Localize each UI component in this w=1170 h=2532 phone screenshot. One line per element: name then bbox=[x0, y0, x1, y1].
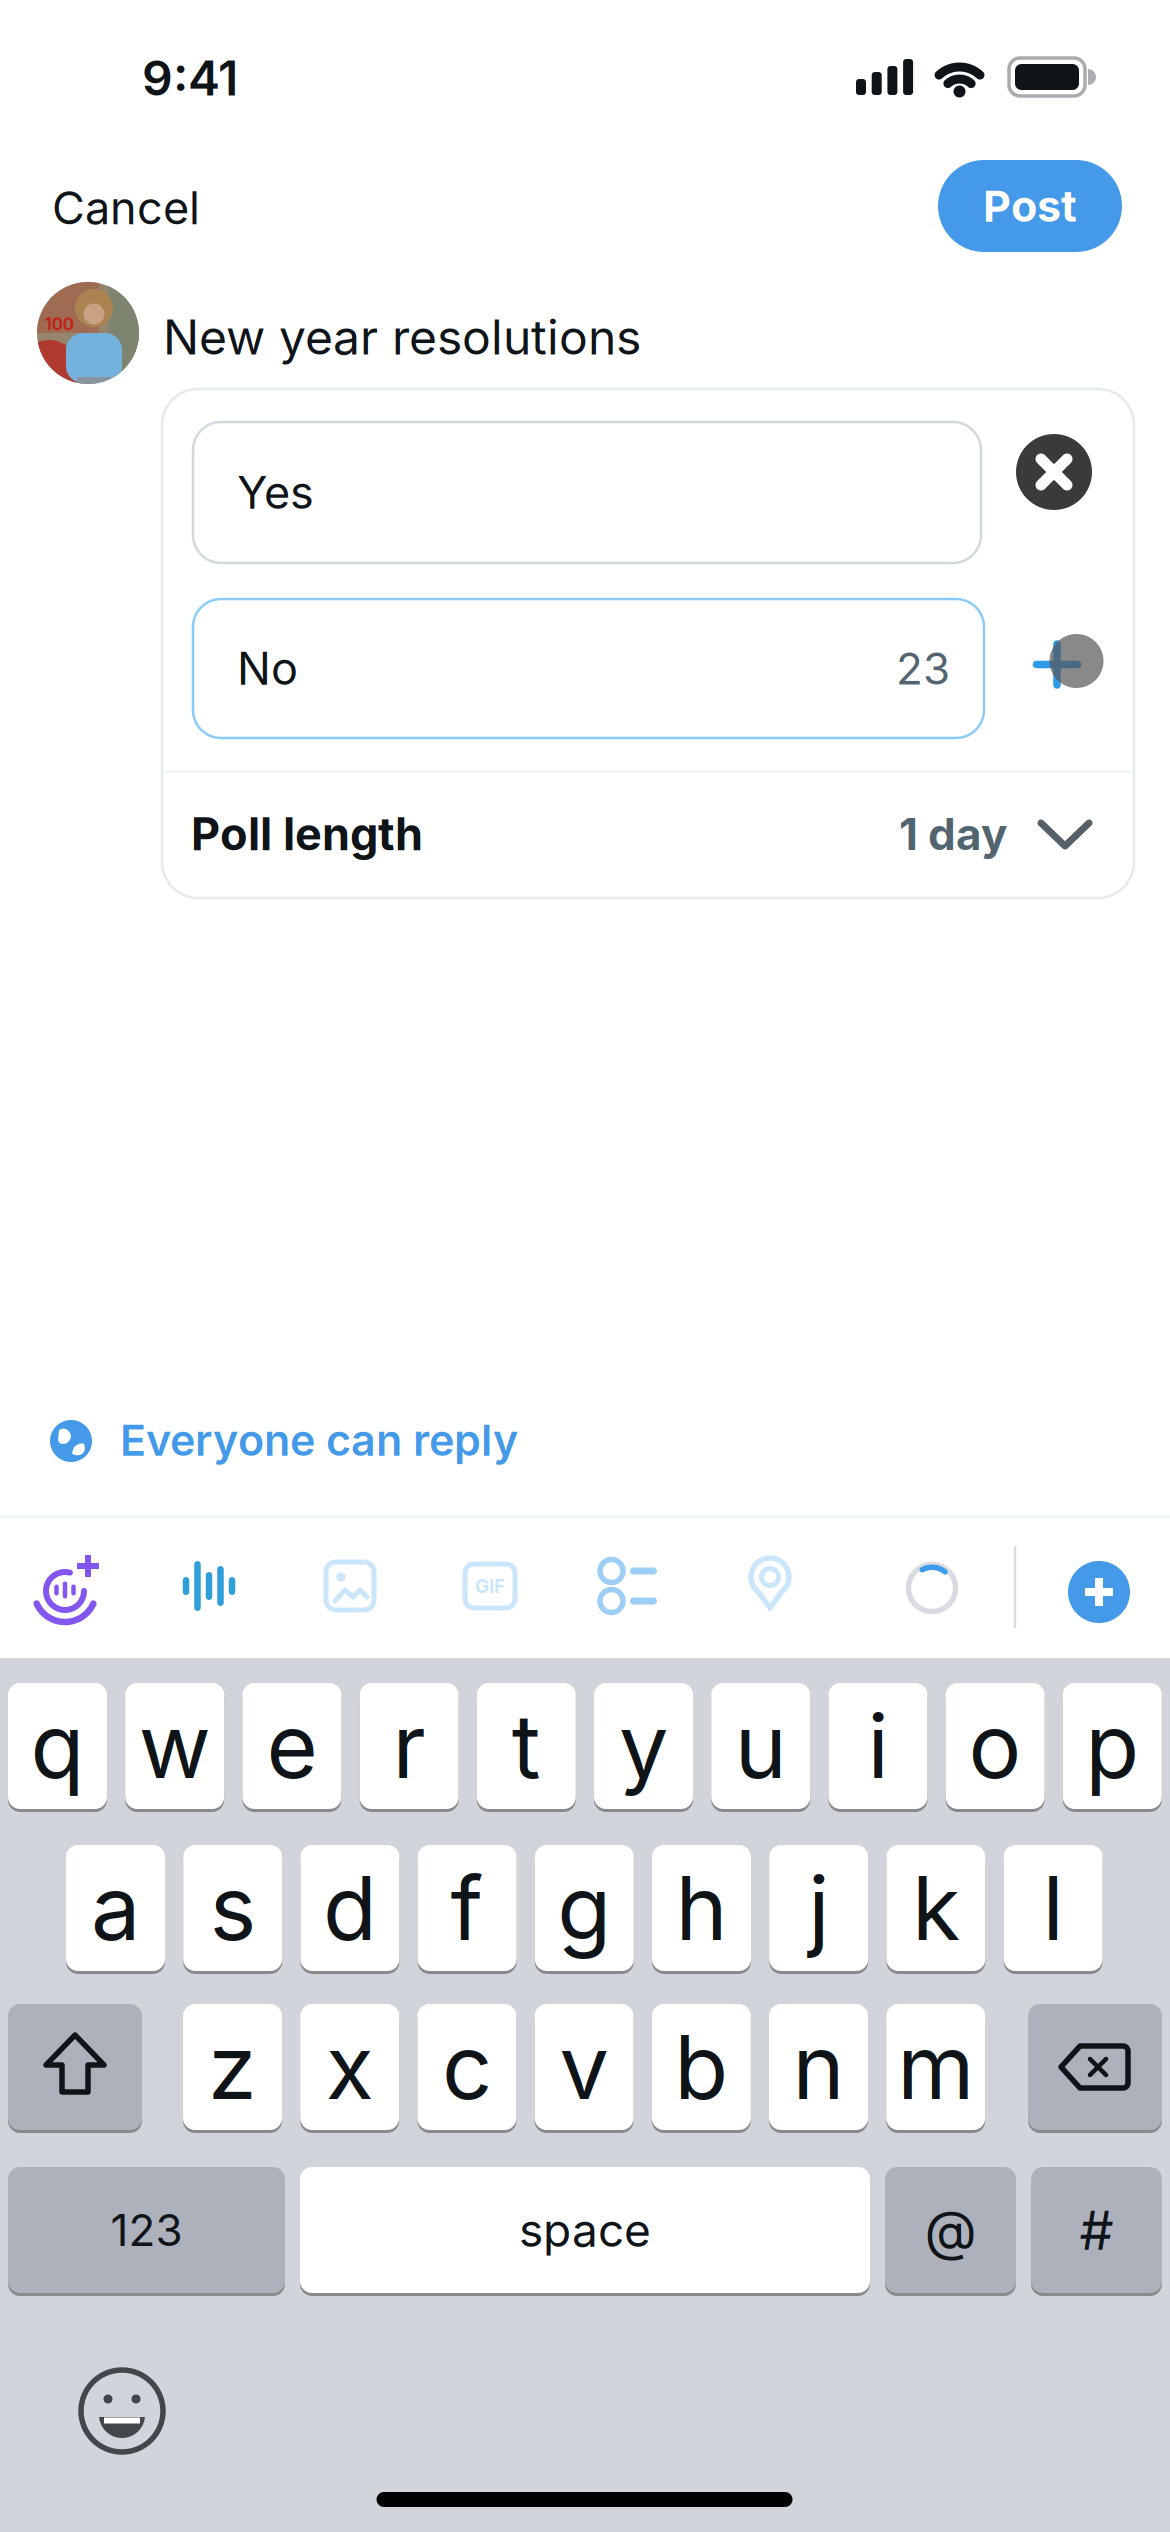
button[interactable]: Emoji bbox=[81, 2370, 163, 2452]
button[interactable]: No bbox=[193, 599, 984, 738]
button[interactable]: m bbox=[886, 2004, 985, 2130]
staticText: l bbox=[1043, 1855, 1064, 1961]
button[interactable]: g bbox=[535, 1845, 634, 1971]
button[interactable]: s bbox=[183, 1845, 282, 1971]
staticText: w bbox=[139, 1693, 211, 1799]
button[interactable]: f bbox=[418, 1845, 517, 1971]
staticText: n bbox=[792, 2014, 844, 2120]
button[interactable]: # bbox=[1031, 2167, 1162, 2293]
button[interactable]: w bbox=[125, 1683, 224, 1809]
button[interactable]: k bbox=[886, 1845, 985, 1971]
button[interactable]: x bbox=[300, 2004, 399, 2130]
button[interactable]: Cancel bbox=[52, 181, 200, 235]
staticText: q bbox=[30, 1693, 84, 1799]
button[interactable]: Everyone can reply bbox=[50, 1411, 740, 1471]
staticText: p bbox=[1085, 1693, 1139, 1799]
staticText: v bbox=[560, 2014, 609, 2120]
button[interactable]: u bbox=[711, 1683, 810, 1809]
button[interactable]: space bbox=[300, 2167, 870, 2293]
staticText: x bbox=[326, 2014, 374, 2120]
staticText: a bbox=[91, 1855, 140, 1961]
button[interactable]: e bbox=[242, 1683, 341, 1809]
staticText: u bbox=[735, 1693, 787, 1799]
staticText: f bbox=[451, 1855, 484, 1961]
button[interactable]: Post bbox=[938, 160, 1122, 252]
button[interactable]: z bbox=[183, 2004, 282, 2130]
staticText: m bbox=[897, 2014, 974, 2120]
staticText: o bbox=[969, 1693, 1022, 1799]
staticText: d bbox=[323, 1855, 377, 1961]
button[interactable]: Audio Space bbox=[35, 1547, 105, 1625]
button[interactable]: b bbox=[652, 2004, 751, 2130]
button[interactable]: Add post bbox=[1068, 1561, 1130, 1623]
staticText: y bbox=[619, 1693, 668, 1799]
staticText: New year resolutions bbox=[163, 308, 641, 366]
staticText: t bbox=[512, 1693, 541, 1799]
staticText: 1 day bbox=[899, 807, 1007, 861]
button[interactable]: a bbox=[66, 1845, 165, 1971]
button[interactable]: Poll length bbox=[163, 772, 1133, 896]
button[interactable]: Location bbox=[745, 1556, 795, 1612]
button[interactable]: Delete bbox=[1028, 2004, 1162, 2130]
button[interactable]: Yes bbox=[193, 422, 981, 563]
staticText: s bbox=[210, 1855, 256, 1961]
button[interactable]: r bbox=[360, 1683, 459, 1809]
button[interactable]: q bbox=[8, 1683, 107, 1809]
button[interactable]: Remove poll bbox=[1016, 434, 1092, 510]
staticText: j bbox=[808, 1855, 829, 1961]
staticText: Everyone can reply bbox=[120, 1414, 518, 1466]
button[interactable]: l bbox=[1004, 1845, 1103, 1971]
staticText: g bbox=[557, 1855, 611, 1961]
button[interactable]: Add option bbox=[1016, 621, 1098, 705]
button[interactable]: Photos bbox=[326, 1562, 374, 1610]
button[interactable]: @ bbox=[885, 2167, 1016, 2293]
button[interactable]: j bbox=[769, 1845, 868, 1971]
staticText: 9:41 bbox=[142, 49, 238, 107]
staticText: c bbox=[442, 2014, 492, 2120]
button[interactable]: v bbox=[535, 2004, 634, 2130]
staticText: 23 bbox=[896, 642, 950, 695]
staticText: z bbox=[208, 2014, 257, 2120]
button[interactable]: 123 bbox=[8, 2167, 285, 2293]
button[interactable]: t bbox=[477, 1683, 576, 1809]
staticText: # bbox=[1079, 2197, 1113, 2263]
staticText: r bbox=[393, 1693, 426, 1799]
staticText: space bbox=[519, 2202, 651, 2258]
button[interactable]: d bbox=[300, 1845, 399, 1971]
staticText: e bbox=[266, 1693, 317, 1799]
button[interactable]: o bbox=[946, 1683, 1045, 1809]
staticText: No bbox=[237, 641, 298, 696]
staticText: b bbox=[674, 2014, 728, 2120]
staticText: @ bbox=[924, 2197, 976, 2263]
button[interactable]: Shift bbox=[8, 2004, 142, 2130]
button[interactable]: n bbox=[769, 2004, 868, 2130]
staticText: Yes bbox=[237, 465, 314, 520]
staticText: 100 bbox=[44, 314, 73, 334]
button[interactable]: h bbox=[652, 1845, 751, 1971]
button[interactable]: p bbox=[1063, 1683, 1162, 1809]
staticText: Cancel bbox=[52, 181, 200, 235]
button[interactable]: y bbox=[594, 1683, 693, 1809]
button[interactable]: Voice note bbox=[182, 1560, 236, 1612]
staticText: k bbox=[912, 1855, 960, 1961]
staticText: Post bbox=[983, 180, 1077, 232]
button[interactable]: c bbox=[417, 2004, 516, 2130]
staticText: h bbox=[675, 1855, 727, 1961]
button[interactable]: Profile photo bbox=[37, 282, 139, 384]
button[interactable]: GIF bbox=[465, 1562, 515, 1610]
staticText: GIF bbox=[475, 1574, 505, 1597]
button[interactable]: Poll bbox=[600, 1559, 658, 1612]
staticText: 123 bbox=[110, 2203, 182, 2257]
staticText: i bbox=[867, 1693, 888, 1799]
button[interactable]: i bbox=[828, 1683, 927, 1809]
staticText: Poll length bbox=[191, 807, 423, 861]
